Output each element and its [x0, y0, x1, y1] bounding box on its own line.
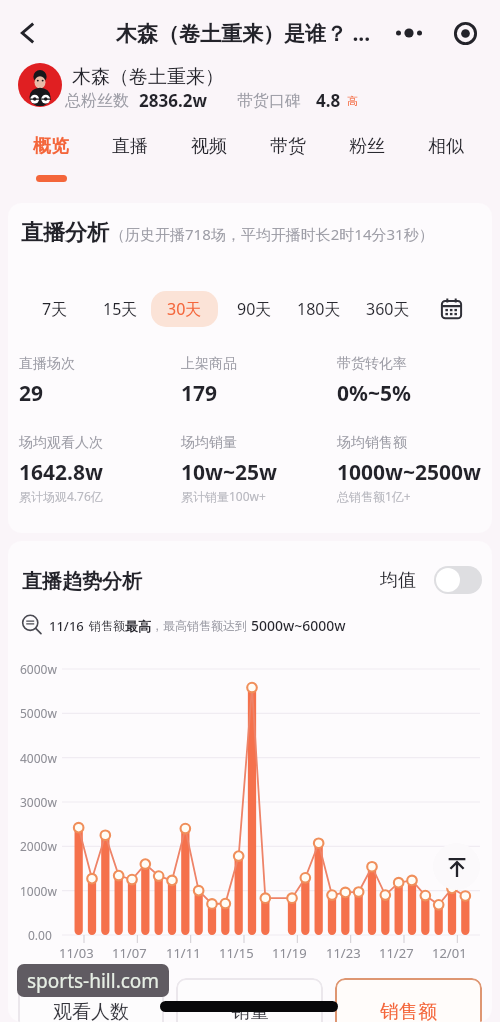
- staticText: 15天: [103, 298, 138, 320]
- staticText: 总销售额1亿+: [337, 488, 411, 504]
- staticText: 1000w: [20, 883, 57, 899]
- button[interactable]: Average toggle: [434, 566, 482, 594]
- staticText: 30天: [167, 298, 202, 320]
- staticText: （历史开播718场，平均开播时长2时14分31秒）: [110, 224, 434, 244]
- staticText: 360天: [366, 298, 410, 320]
- staticText: 11/03: [59, 944, 94, 962]
- staticText: ，: [151, 618, 163, 633]
- staticText: 观看人数: [53, 1000, 129, 1022]
- staticText: 粉丝: [349, 135, 385, 158]
- staticText: 10w~25w: [181, 458, 278, 487]
- staticText: 销量: [231, 1000, 269, 1022]
- staticText: 7天: [42, 298, 68, 320]
- button[interactable]: 销量: [176, 978, 323, 1022]
- staticText: 带货转化率: [337, 355, 407, 373]
- staticText: 视频: [191, 135, 227, 158]
- staticText: 销售额: [89, 618, 125, 633]
- button[interactable]: 180天: [281, 291, 357, 327]
- staticText: 高: [347, 94, 358, 108]
- staticText: 4.8: [316, 89, 341, 112]
- button[interactable]: Scroll to top: [433, 843, 480, 890]
- staticText: 12/01: [432, 944, 467, 962]
- staticText: 5000w~6000w: [251, 616, 346, 635]
- staticText: 11/23: [326, 944, 361, 962]
- button[interactable]: 30天: [151, 291, 218, 327]
- button[interactable]: 15天: [87, 291, 154, 327]
- staticText: 木森（卷土重来）是谁？ ...: [116, 19, 371, 48]
- button[interactable]: 直播: [108, 126, 152, 186]
- staticText: 概览: [33, 135, 69, 158]
- staticText: 直播分析: [21, 219, 109, 247]
- staticText: 4000w: [20, 750, 57, 766]
- button[interactable]: Record: [445, 13, 485, 53]
- staticText: 1642.8w: [19, 458, 103, 487]
- staticText: 90天: [237, 298, 272, 320]
- staticText: 上架商品: [181, 355, 237, 373]
- staticText: 场均销售额: [337, 434, 407, 452]
- staticText: 带货口碑: [237, 91, 301, 111]
- staticText: 11/11: [166, 944, 201, 962]
- button[interactable]: 粉丝: [345, 126, 389, 186]
- staticText: 直播: [112, 135, 148, 158]
- staticText: 5000w: [20, 705, 57, 721]
- button[interactable]: Avatar: [18, 63, 62, 107]
- staticText: 2836.2w: [139, 89, 207, 112]
- button[interactable]: 概览: [29, 126, 73, 186]
- staticText: 直播趋势分析: [22, 569, 142, 594]
- staticText: 直播场次: [19, 355, 75, 373]
- staticText: 累计场观4.76亿: [19, 488, 103, 504]
- staticText: 累计销量100w+: [181, 488, 266, 504]
- staticText: 最高销售额达到: [163, 618, 247, 633]
- button[interactable]: 360天: [350, 291, 426, 327]
- button[interactable]: 7天: [26, 291, 84, 327]
- button[interactable]: 销售额: [335, 978, 482, 1022]
- staticText: 11/16: [49, 617, 84, 635]
- staticText: 0.00: [28, 927, 52, 943]
- staticText: 3000w: [20, 794, 57, 810]
- button[interactable]: 视频: [187, 126, 231, 186]
- staticText: sports-hill.com: [27, 968, 160, 994]
- button[interactable]: 90天: [221, 291, 288, 327]
- staticText: 木森（卷土重来）: [72, 65, 224, 89]
- staticText: 29: [19, 379, 44, 408]
- staticText: 11/15: [219, 944, 254, 962]
- button[interactable]: Pick date range: [437, 294, 465, 322]
- staticText: 11/27: [379, 944, 414, 962]
- staticText: 最高: [125, 618, 151, 634]
- staticText: 总粉丝数: [65, 91, 129, 111]
- staticText: 1000w~2500w: [337, 458, 482, 487]
- staticText: 11/07: [112, 944, 147, 962]
- staticText: 179: [181, 379, 218, 408]
- button[interactable]: 带货: [266, 126, 310, 186]
- staticText: 带货: [270, 135, 306, 158]
- staticText: 销售额: [380, 1000, 437, 1022]
- staticText: 均值: [380, 569, 416, 592]
- button[interactable]: 相似: [424, 126, 468, 186]
- staticText: 相似: [428, 135, 464, 158]
- button[interactable]: More options: [389, 13, 429, 53]
- button[interactable]: Back: [7, 12, 49, 54]
- staticText: 2000w: [20, 838, 57, 854]
- staticText: 0%~5%: [337, 379, 411, 408]
- staticText: 11/19: [272, 944, 307, 962]
- staticText: 场均观看人次: [19, 434, 103, 452]
- staticText: 场均销量: [181, 434, 237, 452]
- button[interactable]: 观看人数: [18, 978, 164, 1022]
- staticText: 6000w: [20, 661, 57, 677]
- staticText: 180天: [297, 298, 341, 320]
